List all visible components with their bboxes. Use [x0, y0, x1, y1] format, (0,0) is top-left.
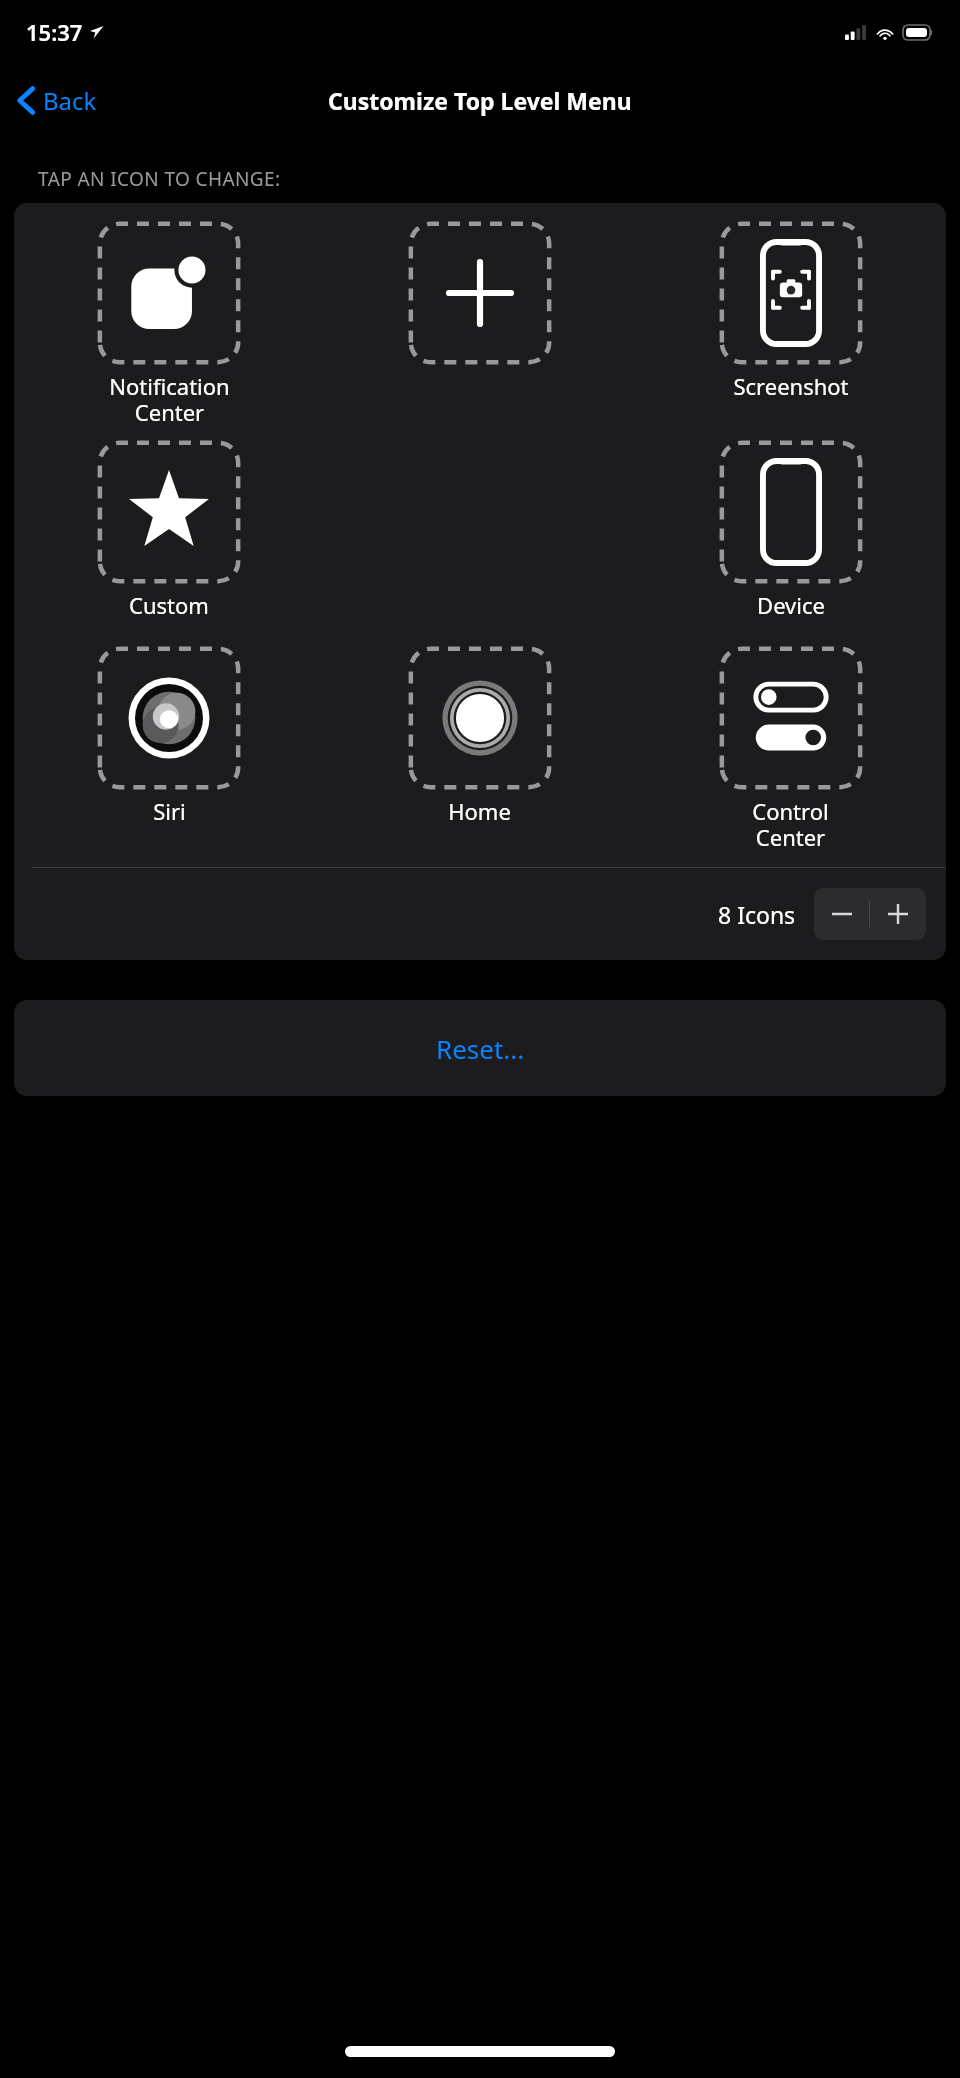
staticText: Custom [129, 590, 209, 620]
button[interactable]: Control Center [715, 642, 867, 794]
staticText: Back [43, 84, 97, 117]
button[interactable]: Back [0, 78, 107, 123]
button[interactable]: Reset... [14, 1000, 946, 1096]
button[interactable]: Home [404, 642, 556, 794]
staticText: TAP AN ICON TO CHANGE: [38, 166, 281, 192]
staticText: 15:37 [26, 17, 83, 47]
staticText: Device [757, 590, 825, 620]
staticText: Screenshot [733, 371, 849, 401]
button[interactable]: Increase icon count [870, 888, 926, 940]
staticText: Control Center [752, 796, 829, 853]
button[interactable]: Decrease icon count [814, 888, 869, 940]
button[interactable]: Notification Center [93, 217, 245, 369]
button[interactable]: Add icon [404, 217, 556, 369]
staticText: Notification Center [109, 371, 230, 428]
button[interactable]: Custom [93, 436, 245, 588]
staticText: Customize Top Level Menu [328, 85, 632, 116]
staticText: Reset... [436, 1031, 525, 1066]
button[interactable]: Siri [93, 642, 245, 794]
button[interactable]: Screenshot [715, 217, 867, 369]
staticText: Siri [153, 796, 186, 826]
staticText: Home [448, 796, 511, 826]
staticText: 8 Icons [718, 899, 796, 930]
button[interactable]: Device [715, 436, 867, 588]
